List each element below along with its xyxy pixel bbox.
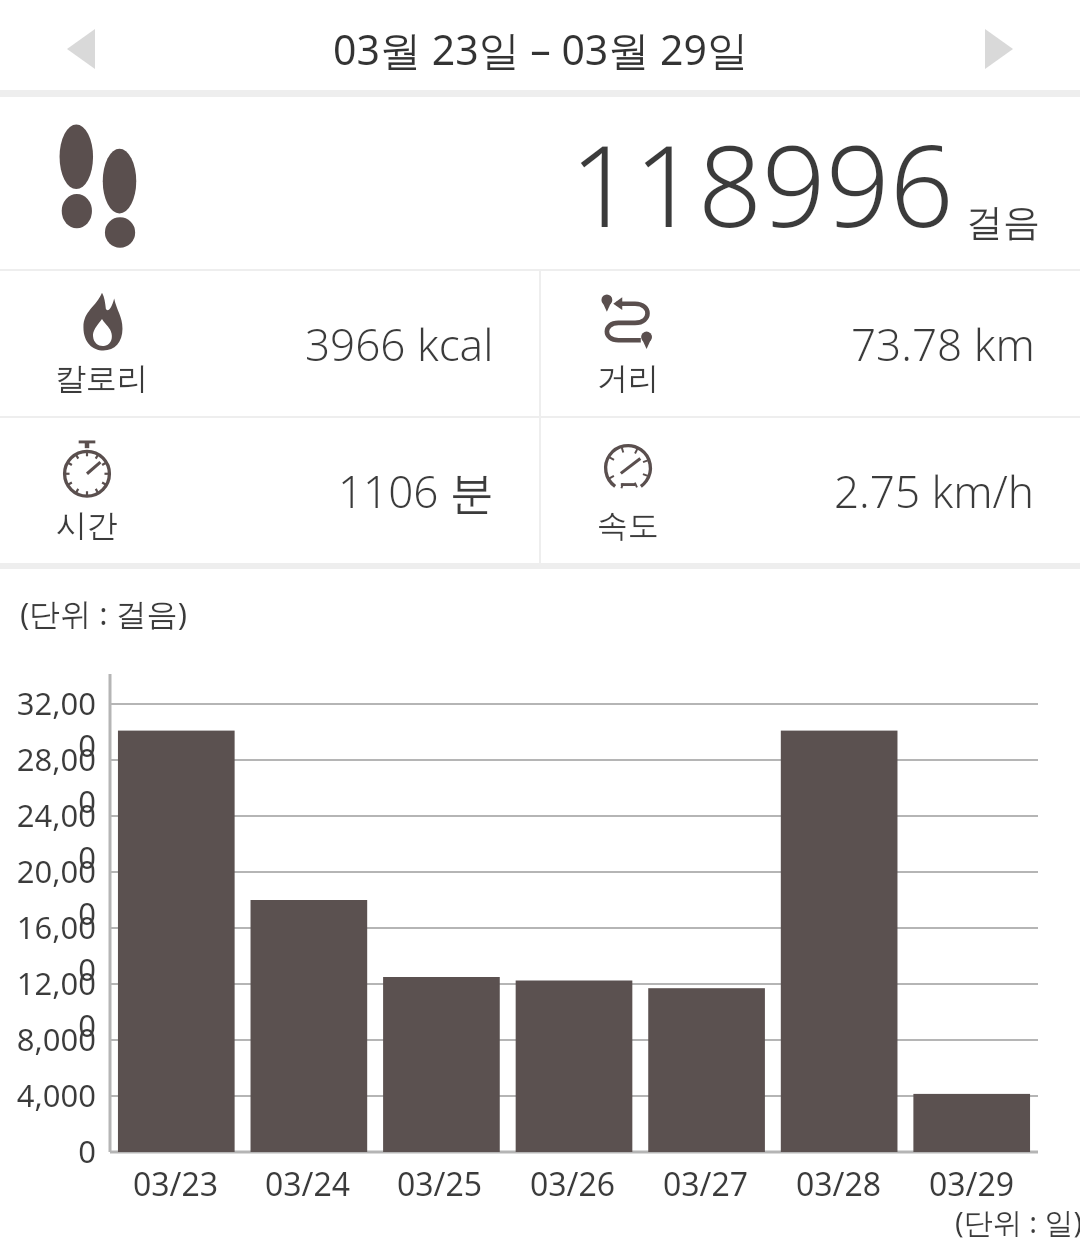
staticText: 03/27 — [663, 1162, 749, 1206]
button[interactable]: 시간 — [0, 418, 539, 563]
staticText: 03/25 — [397, 1162, 483, 1206]
button[interactable]: Next week — [962, 12, 1036, 86]
staticText: 03/28 — [796, 1162, 882, 1206]
staticText: 거리 — [597, 359, 659, 398]
staticText: 0 — [78, 1130, 96, 1172]
staticText: (단위 : 일) — [955, 1202, 1080, 1242]
staticText: 16,000 — [0, 906, 96, 990]
button[interactable]: 거리 — [541, 271, 1080, 416]
button[interactable]: 118996 — [0, 97, 1080, 269]
button[interactable]: 속도 — [541, 418, 1080, 563]
staticText: 3966 kcal — [305, 314, 494, 374]
staticText: (단위 : 걸음) — [20, 592, 188, 634]
staticText: 4,000 — [16, 1074, 96, 1116]
staticText: 24,000 — [0, 794, 96, 878]
staticText: 8,000 — [16, 1018, 96, 1060]
staticText: 걸음 — [966, 199, 1040, 246]
staticText: 03/29 — [929, 1162, 1015, 1206]
staticText: 2.75 km/h — [834, 461, 1035, 521]
staticText: 칼로리 — [55, 359, 148, 398]
staticText: 시간 — [56, 506, 118, 545]
staticText: 03/26 — [530, 1162, 616, 1206]
staticText: 03/24 — [265, 1162, 351, 1206]
staticText: 73.78 km — [851, 314, 1035, 374]
staticText: 1106 분 — [338, 461, 494, 521]
staticText: 32,000 — [0, 682, 96, 766]
staticText: 20,000 — [0, 850, 96, 934]
staticText: 118996 — [570, 107, 954, 260]
staticText: 03월 23일 – 03월 29일 — [333, 21, 748, 77]
staticText: 28,000 — [0, 738, 96, 822]
staticText: 03/23 — [133, 1162, 219, 1206]
staticText: 12,000 — [0, 962, 96, 1046]
staticText: 속도 — [597, 506, 659, 545]
button[interactable]: 칼로리 — [0, 271, 539, 416]
button[interactable]: Previous week — [44, 12, 118, 86]
